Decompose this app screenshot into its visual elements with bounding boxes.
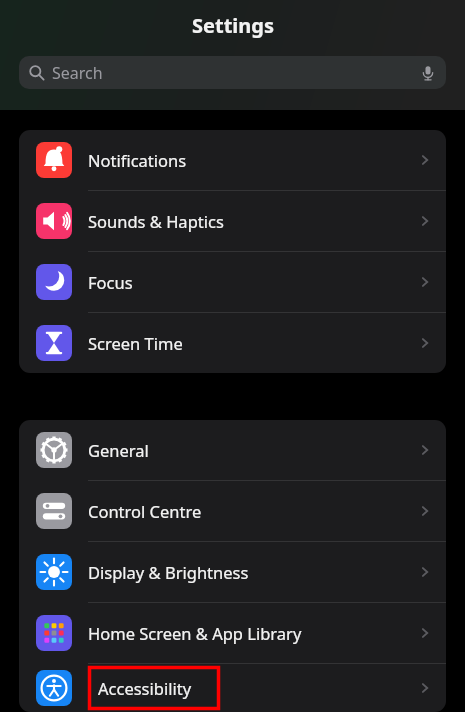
staticText: Accessibility — [98, 677, 192, 699]
button[interactable]: General — [19, 420, 446, 480]
staticText: Focus — [88, 271, 133, 293]
other: Voice search — [419, 64, 437, 82]
staticText: Settings — [192, 12, 274, 39]
staticText: Search — [52, 62, 103, 84]
staticText: Home Screen & App Library — [88, 622, 302, 644]
staticText: Display & Brightness — [88, 561, 249, 583]
button[interactable]: Home Screen & App Library — [19, 603, 446, 663]
staticText: Notifications — [88, 149, 187, 171]
staticText: Control Centre — [88, 500, 202, 522]
staticText: Sounds & Haptics — [88, 210, 224, 232]
button[interactable]: Notifications — [19, 130, 446, 190]
button[interactable]: Focus — [19, 252, 446, 312]
button[interactable]: Accessibility — [19, 664, 446, 712]
staticText: Screen Time — [88, 332, 183, 354]
staticText: General — [88, 439, 149, 461]
button[interactable]: Display & Brightness — [19, 542, 446, 602]
button[interactable]: Control Centre — [19, 481, 446, 541]
button[interactable]: Sounds & Haptics — [19, 191, 446, 251]
button[interactable]: Search — [19, 56, 446, 89]
button[interactable]: Screen Time — [19, 313, 446, 373]
